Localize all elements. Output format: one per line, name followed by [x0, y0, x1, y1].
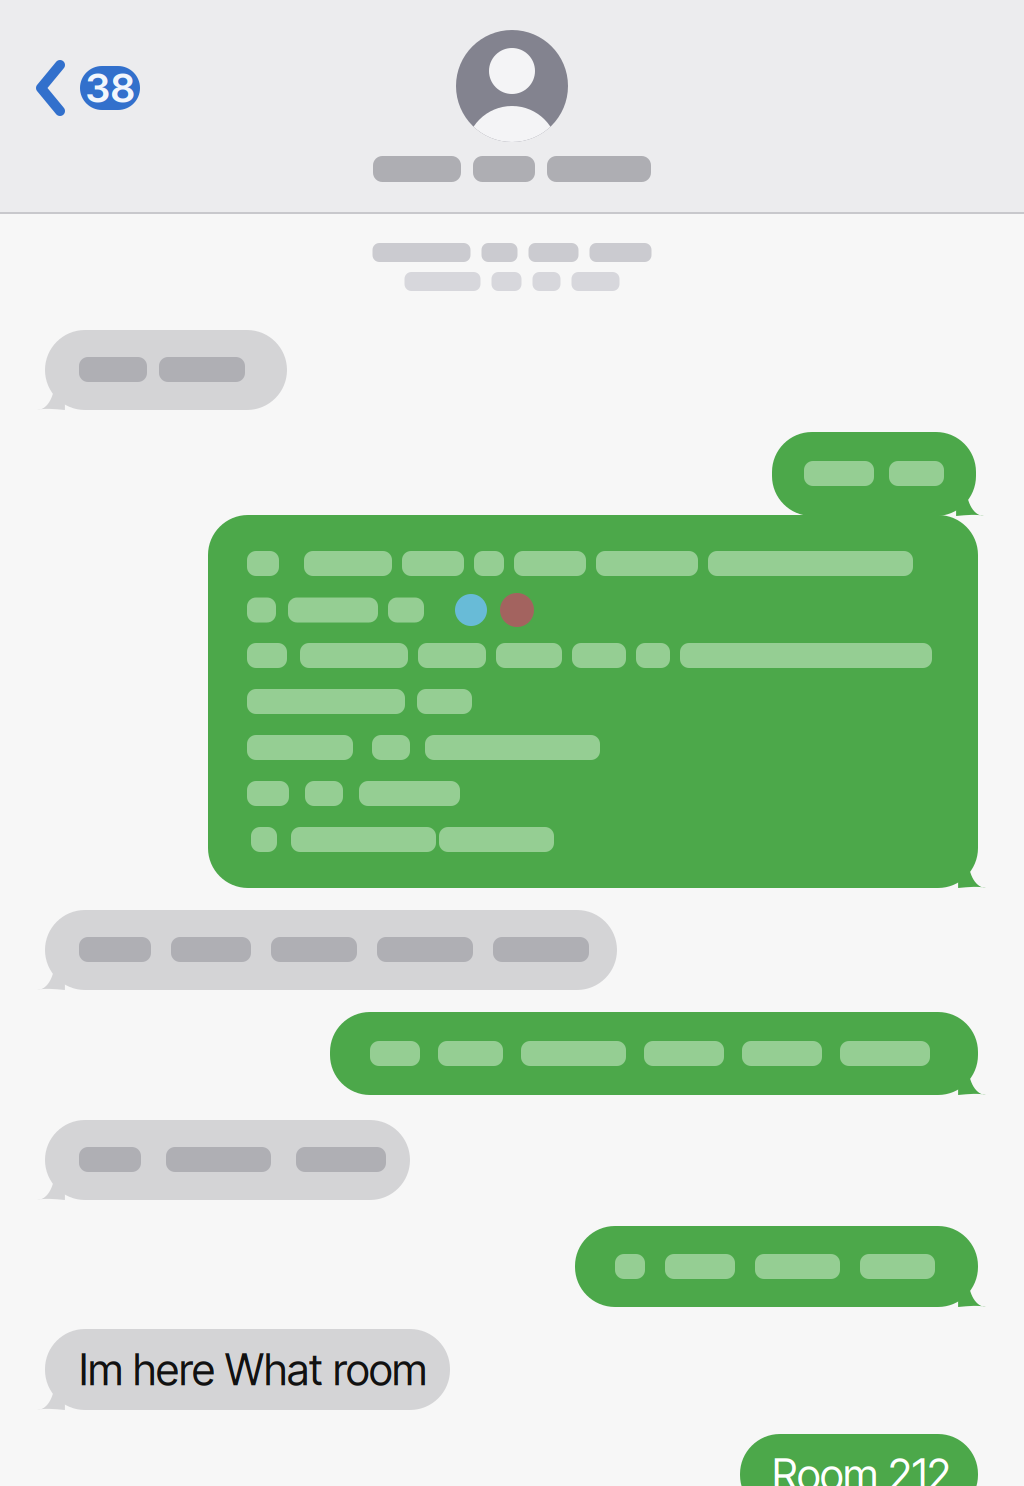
staticText: Room 212: [772, 1449, 951, 1486]
button[interactable]: [772, 432, 976, 516]
button[interactable]: [208, 515, 978, 888]
button[interactable]: [45, 910, 617, 990]
button[interactable]: Room 212: [740, 1434, 978, 1486]
button[interactable]: [575, 1226, 978, 1307]
staticText: 38: [85, 64, 134, 112]
button[interactable]: [330, 1012, 978, 1095]
button[interactable]: [45, 330, 287, 410]
button[interactable]: Im here What room: [45, 1329, 450, 1410]
button[interactable]: [45, 1120, 410, 1200]
button[interactable]: Contact details: [373, 30, 651, 182]
button[interactable]: Back to Messages: [19, 44, 156, 132]
staticText: Im here What room: [79, 1344, 427, 1396]
